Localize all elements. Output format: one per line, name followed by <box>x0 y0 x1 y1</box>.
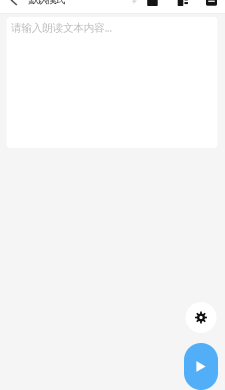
button[interactable]: Play <box>184 343 218 390</box>
button[interactable]: Settings <box>185 302 216 333</box>
staticText: 默认模式 <box>28 0 66 6</box>
button[interactable]: Back, 默认模式 <box>0 0 72 6</box>
staticText: 请输入朗读文本内容... <box>11 20 112 35</box>
